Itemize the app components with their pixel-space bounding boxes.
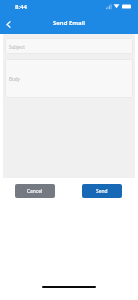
staticText: Send Email bbox=[53, 19, 85, 27]
staticText: 8:44 bbox=[15, 3, 27, 11]
button[interactable]: Cancel bbox=[15, 184, 55, 198]
button[interactable]: Send bbox=[82, 184, 122, 198]
staticText: Body bbox=[9, 76, 20, 82]
staticText: Subject bbox=[9, 44, 25, 50]
staticText: Cancel bbox=[27, 188, 43, 195]
button[interactable]: Back bbox=[0, 13, 16, 34]
staticText: Send bbox=[96, 188, 108, 195]
button[interactable]: Subject bbox=[5, 38, 133, 54]
button[interactable]: Body bbox=[5, 59, 133, 98]
